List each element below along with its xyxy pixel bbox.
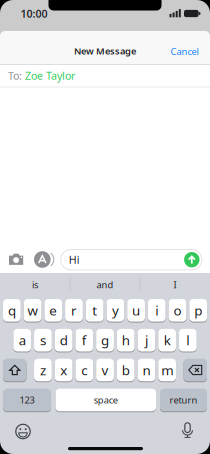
- staticText: p: [194, 301, 202, 319]
- staticText: a: [19, 331, 26, 349]
- staticText: h: [122, 331, 130, 349]
- staticText: k: [164, 331, 171, 349]
- staticText: f: [82, 331, 87, 349]
- staticText: w: [28, 301, 38, 319]
- button[interactable]: m: [158, 358, 176, 382]
- button[interactable]: 123: [3, 388, 51, 412]
- staticText: and: [96, 278, 113, 291]
- staticText: u: [132, 301, 140, 319]
- staticText: s: [40, 331, 46, 349]
- staticText: z: [40, 361, 46, 379]
- staticText: y: [112, 301, 119, 319]
- button[interactable]: s: [34, 328, 52, 352]
- button[interactable]: l: [179, 328, 197, 352]
- button[interactable]: w: [24, 298, 41, 322]
- button[interactable]: I: [145, 275, 205, 295]
- staticText: space: [94, 394, 118, 406]
- button[interactable]: space: [55, 388, 156, 412]
- button[interactable]: j: [137, 328, 155, 352]
- button[interactable]: z: [34, 358, 52, 382]
- button[interactable]: g: [96, 328, 114, 352]
- button[interactable]: o: [169, 298, 186, 322]
- button[interactable]: and: [75, 275, 135, 295]
- button[interactable]: f: [75, 328, 93, 352]
- staticText: l: [186, 331, 189, 349]
- button[interactable]: return: [160, 388, 207, 412]
- button[interactable]: b: [117, 358, 135, 382]
- staticText: Hi: [69, 253, 80, 267]
- button[interactable]: t: [86, 298, 104, 322]
- button[interactable]: Camera: [8, 252, 25, 266]
- button[interactable]: Cancel: [170, 45, 198, 57]
- button[interactable]: x: [55, 358, 73, 382]
- staticText: 123: [19, 394, 34, 406]
- staticText: i: [155, 301, 158, 319]
- staticText: o: [173, 301, 181, 319]
- staticText: v: [101, 361, 108, 379]
- staticText: m: [161, 361, 173, 379]
- button[interactable]: is: [5, 275, 65, 295]
- staticText: x: [60, 361, 67, 379]
- button[interactable]: y: [106, 298, 124, 322]
- staticText: Cancel: [170, 45, 198, 57]
- button[interactable]: u: [127, 298, 145, 322]
- staticText: c: [81, 361, 87, 379]
- button[interactable]: Apps: [34, 250, 58, 268]
- staticText: j: [145, 331, 148, 349]
- button[interactable]: Send: [184, 252, 199, 267]
- staticText: q: [8, 301, 16, 319]
- staticText: Zoe Taylor: [25, 69, 75, 83]
- staticText: 10:00: [20, 6, 47, 21]
- button[interactable]: q: [3, 298, 21, 322]
- button[interactable]: v: [96, 358, 114, 382]
- button[interactable]: p: [189, 298, 207, 322]
- staticText: d: [60, 331, 68, 349]
- button[interactable]: e: [44, 298, 62, 322]
- button[interactable]: d: [55, 328, 73, 352]
- button[interactable]: To:: [8, 65, 208, 86]
- button[interactable]: a: [13, 328, 31, 352]
- staticText: r: [71, 301, 77, 319]
- staticText: I: [173, 278, 176, 291]
- button[interactable]: r: [65, 298, 83, 322]
- staticText: t: [92, 301, 97, 319]
- staticText: is: [32, 278, 38, 291]
- staticText: n: [142, 361, 150, 379]
- button[interactable]: h: [117, 328, 135, 352]
- button[interactable]: k: [158, 328, 176, 352]
- button[interactable]: c: [75, 358, 93, 382]
- button[interactable]: i: [148, 298, 166, 322]
- staticText: g: [101, 331, 109, 349]
- staticText: To:: [8, 69, 22, 83]
- staticText: b: [122, 361, 130, 379]
- staticText: e: [49, 301, 57, 319]
- button[interactable]: Dictation: [181, 421, 193, 439]
- button[interactable]: Shift: [3, 358, 26, 382]
- button[interactable]: Emoji: [14, 422, 32, 440]
- staticText: New Message: [74, 45, 136, 57]
- button[interactable]: n: [138, 358, 155, 382]
- button[interactable]: Delete: [183, 358, 207, 382]
- staticText: return: [169, 394, 197, 406]
